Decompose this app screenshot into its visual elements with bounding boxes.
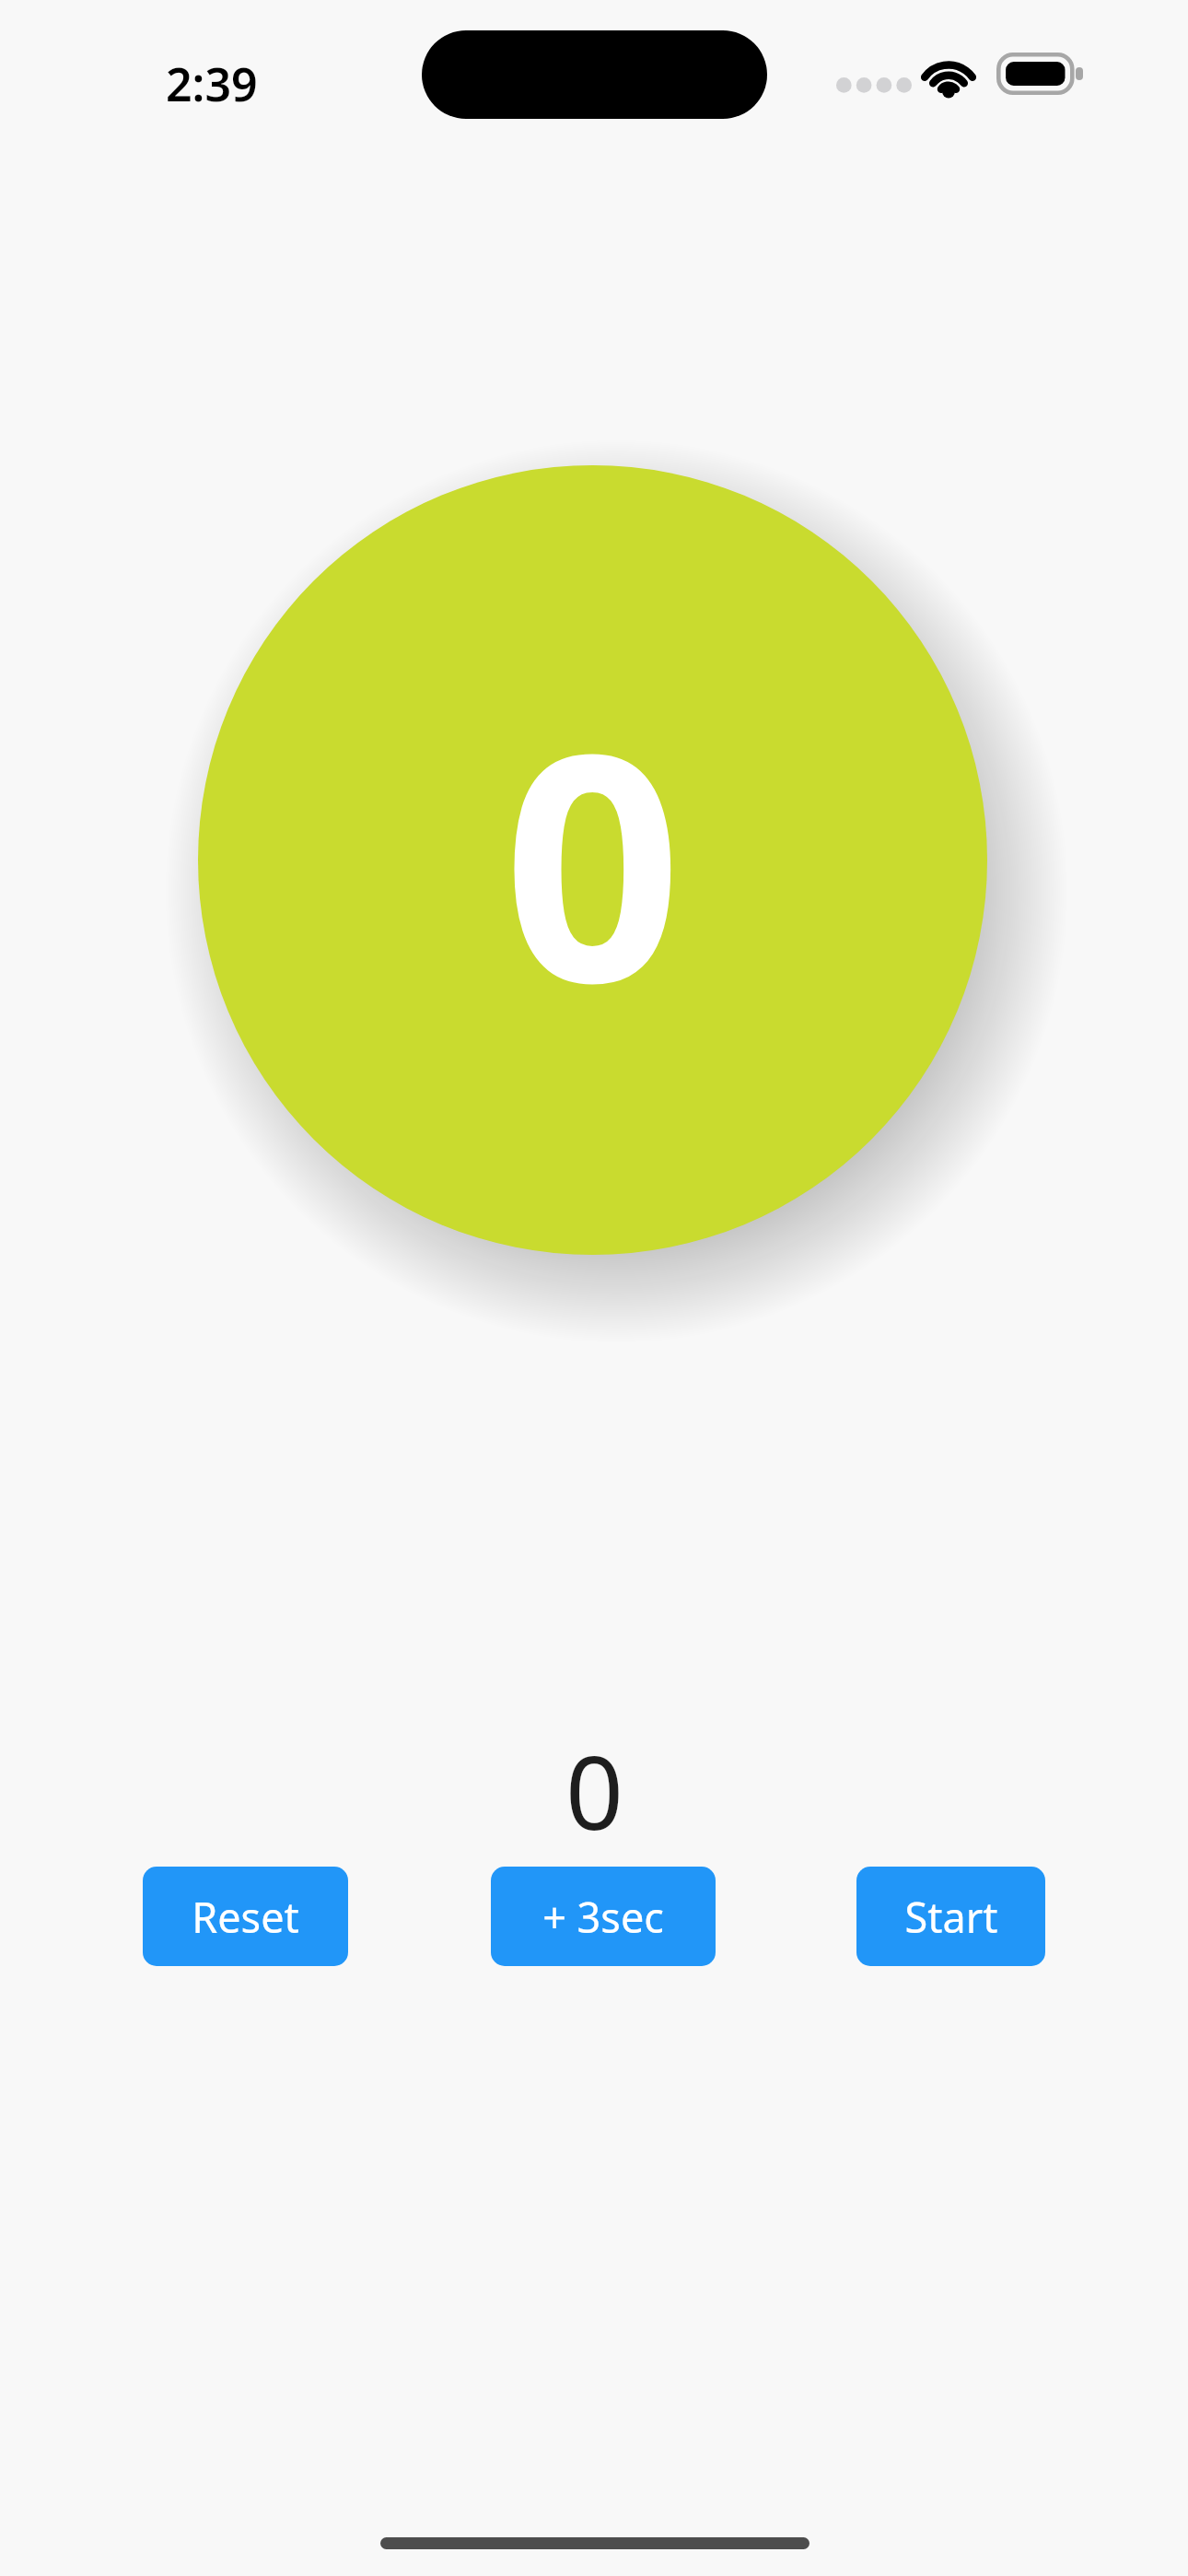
button[interactable]: + 3sec — [491, 1867, 716, 1966]
staticText: Start — [904, 1889, 998, 1945]
button[interactable]: Start — [856, 1867, 1045, 1966]
staticText: 2:39 — [166, 53, 258, 115]
staticText: + 3sec — [542, 1889, 664, 1945]
staticText: Reset — [192, 1889, 299, 1945]
button[interactable]: Reset — [143, 1867, 348, 1966]
staticText: 0 — [503, 647, 682, 1073]
button[interactable]: Timer display — [198, 465, 987, 1255]
staticText: 0 — [565, 1721, 623, 1859]
